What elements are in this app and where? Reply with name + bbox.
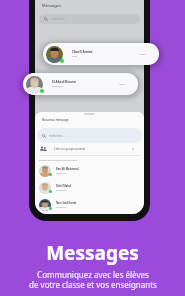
staticText: 18:45 (140, 53, 146, 56)
staticText: rechercher... (49, 134, 65, 138)
staticText: Enseignant (52, 85, 64, 88)
staticText: Messages (46, 240, 139, 266)
staticText: Charfi Amine (72, 50, 93, 54)
staticText: El Abed Mouna (52, 80, 76, 84)
other: Rechercher (44, 17, 48, 21)
staticText: Nsrs Said Karim (56, 201, 77, 205)
staticText: Enseignant (56, 189, 67, 192)
staticText: Eleve (72, 55, 78, 58)
button[interactable]: Ben Ali Mohamed (35, 162, 144, 179)
button[interactable]: Rechercher (39, 14, 140, 24)
staticText: Suggestions enseignants/personnels (39, 159, 77, 162)
button[interactable]: El Abed Mouna (23, 73, 138, 95)
button[interactable]: Groupe (35, 143, 144, 155)
button[interactable]: Nsrs Said Karim (35, 196, 144, 213)
staticText: Créer un groupe parents (54, 147, 86, 151)
button[interactable]: Charfi Amine (43, 43, 159, 65)
staticText: 16:25 (119, 83, 125, 86)
staticText: rechercher... (51, 17, 67, 21)
staticText: Enseignant (56, 206, 67, 209)
staticText: Communiquez avec les élèves de votre cla… (29, 269, 157, 291)
staticText: Messages (42, 3, 61, 8)
other: Groupe (40, 146, 47, 153)
other: Rechercher (42, 134, 46, 138)
staticText: Ben Ali Mohamed (56, 167, 79, 171)
staticText: Enseignant (56, 172, 67, 175)
button[interactable]: Dalel Mahdi (35, 179, 144, 196)
staticText: Dalel Mahdi (56, 184, 72, 188)
button[interactable]: Rechercher (37, 128, 142, 143)
staticText: Nouveau message (42, 118, 69, 122)
